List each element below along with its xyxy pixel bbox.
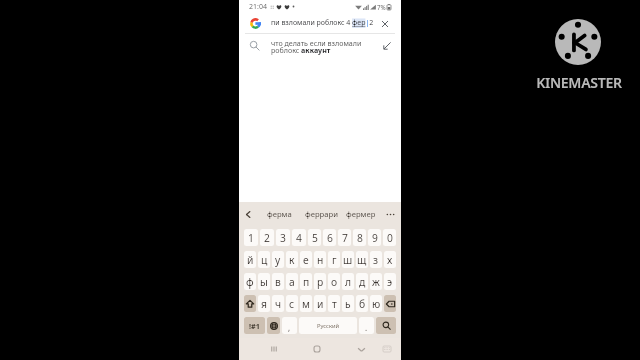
staticText: г xyxy=(332,253,337,267)
staticText: 21:04 xyxy=(249,2,267,12)
staticText: б xyxy=(359,297,366,311)
button[interactable]: 1 xyxy=(244,229,258,246)
staticText: что делать если взломали роблокс аккаунт xyxy=(271,38,362,56)
staticText: фермер xyxy=(346,209,376,219)
staticText: ц xyxy=(261,253,268,267)
button[interactable]: г xyxy=(328,251,340,268)
staticText: р xyxy=(317,275,324,289)
staticText: 9 xyxy=(372,231,378,245)
staticText: п xyxy=(303,275,310,289)
staticText: с xyxy=(289,297,295,311)
button[interactable]: щ xyxy=(356,251,368,268)
staticText: ь xyxy=(345,297,351,311)
button[interactable]: ы xyxy=(258,273,270,290)
button[interactable]: ферма xyxy=(257,206,301,222)
button[interactable]: Русский xyxy=(299,317,357,334)
button[interactable]: феррари xyxy=(299,206,343,222)
staticText: ы xyxy=(260,275,268,289)
button[interactable]: с xyxy=(286,295,298,312)
staticText: н xyxy=(317,253,324,267)
staticText: 4 xyxy=(296,231,302,245)
button[interactable]: Search xyxy=(376,317,396,334)
button[interactable]: 8 xyxy=(353,229,366,246)
button[interactable]: . xyxy=(359,317,374,334)
button[interactable]: д xyxy=(356,273,368,290)
staticText: 7 xyxy=(342,231,348,245)
button[interactable]: ц xyxy=(258,251,270,268)
button[interactable]: Recent apps xyxy=(265,340,283,358)
button[interactable]: Previous suggestions xyxy=(242,208,255,221)
button[interactable]: Hide keyboard xyxy=(352,340,370,358)
button[interactable]: 6 xyxy=(323,229,336,246)
button[interactable]: 2 xyxy=(260,229,274,246)
button[interactable]: в xyxy=(272,273,284,290)
button[interactable]: к xyxy=(286,251,298,268)
staticText: о xyxy=(331,275,338,289)
staticText: 5 xyxy=(312,231,318,245)
button[interactable]: Backspace xyxy=(384,295,396,312)
button[interactable]: м xyxy=(300,295,312,312)
button[interactable]: л xyxy=(342,273,354,290)
staticText: 7% xyxy=(377,3,386,11)
staticText: ферма xyxy=(267,209,292,219)
button[interactable]: х xyxy=(384,251,396,268)
staticText: в xyxy=(275,275,281,289)
button[interactable]: т xyxy=(328,295,340,312)
staticText: у xyxy=(275,253,281,267)
button[interactable]: 3 xyxy=(276,229,290,246)
button[interactable]: что делать если взломали роблокс аккаунт xyxy=(239,34,401,56)
staticText: д xyxy=(359,275,366,289)
button[interactable]: ь xyxy=(342,295,354,312)
button[interactable]: з xyxy=(370,251,382,268)
staticText: е xyxy=(303,253,309,267)
staticText: Русский xyxy=(317,322,340,330)
button[interactable]: у xyxy=(272,251,284,268)
button[interactable]: Keyboard layout xyxy=(380,342,394,356)
button[interactable]: ф xyxy=(244,273,256,290)
button[interactable]: !#1 xyxy=(244,317,265,334)
button[interactable]: 5 xyxy=(308,229,321,246)
button[interactable]: ж xyxy=(370,273,382,290)
staticText: 1 xyxy=(248,231,254,245)
button[interactable]: е xyxy=(300,251,312,268)
button[interactable]: р xyxy=(314,273,326,290)
staticText: л xyxy=(345,275,352,289)
button[interactable]: Home xyxy=(308,340,326,358)
button[interactable]: Shift xyxy=(244,295,256,312)
button[interactable]: б xyxy=(356,295,368,312)
button[interactable]: Insert suggestion xyxy=(379,38,394,53)
button[interactable]: ш xyxy=(342,251,354,268)
staticText: !#1 xyxy=(249,321,260,331)
staticText: , xyxy=(288,322,291,333)
staticText: х xyxy=(387,253,393,267)
button[interactable]: н xyxy=(314,251,326,268)
staticText: т xyxy=(332,297,337,311)
button[interactable]: ч xyxy=(272,295,284,312)
button[interactable]: More options xyxy=(384,208,397,221)
button[interactable]: п xyxy=(300,273,312,290)
staticText: KINEMASTER xyxy=(531,73,627,92)
button[interactable]: Change language xyxy=(267,317,280,334)
staticText: а xyxy=(289,275,295,289)
staticText: э xyxy=(387,275,393,289)
staticText: ж xyxy=(372,275,380,289)
button[interactable]: а xyxy=(286,273,298,290)
staticText: 8 xyxy=(357,231,363,245)
staticText: щ xyxy=(357,253,367,267)
button[interactable]: ю xyxy=(370,295,382,312)
staticText: к xyxy=(289,253,295,267)
button[interactable]: э xyxy=(384,273,396,290)
button[interactable]: и xyxy=(314,295,326,312)
staticText: 6 xyxy=(327,231,333,245)
button[interactable]: я xyxy=(258,295,270,312)
button[interactable]: 0 xyxy=(383,229,396,246)
button[interactable]: 4 xyxy=(292,229,306,246)
button[interactable]: 9 xyxy=(368,229,381,246)
button[interactable]: фермер xyxy=(339,206,383,222)
staticText: я xyxy=(261,297,267,311)
button[interactable]: 7 xyxy=(338,229,351,246)
button[interactable]: Clear xyxy=(377,16,392,31)
button[interactable]: о xyxy=(328,273,340,290)
button[interactable]: , xyxy=(282,317,297,334)
button[interactable]: й xyxy=(244,251,256,268)
